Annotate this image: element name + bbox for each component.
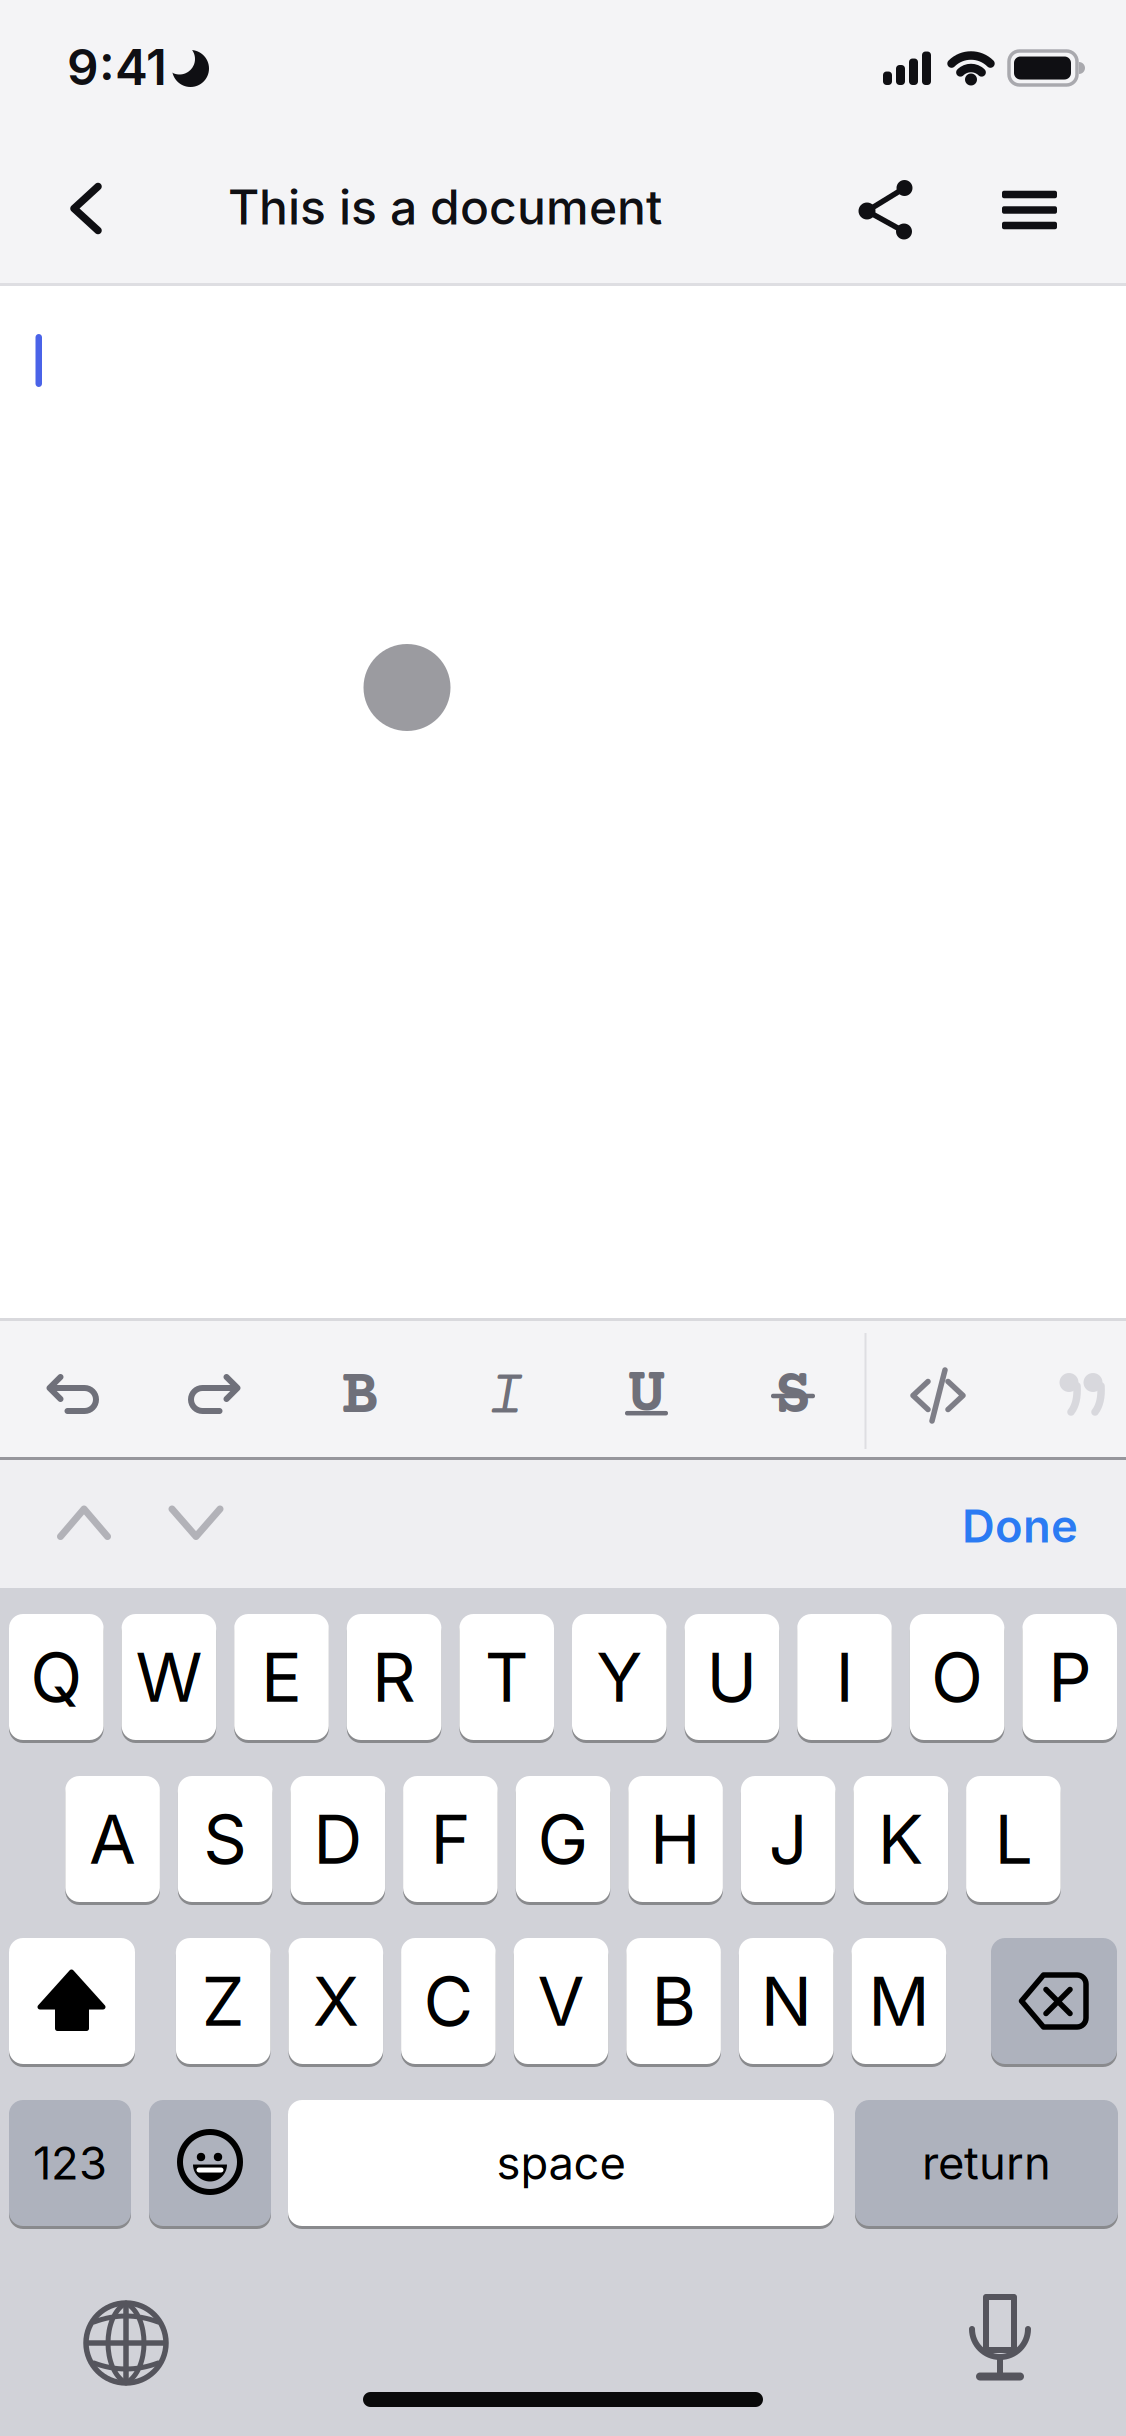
staticText: B bbox=[341, 1362, 379, 1434]
button[interactable]: X bbox=[288, 1936, 383, 2065]
staticText: B bbox=[652, 1960, 696, 2042]
button[interactable]: Done bbox=[778, 1499, 1078, 1553]
button[interactable]: Strikethrough bbox=[738, 1337, 848, 1447]
button[interactable]: M bbox=[851, 1936, 946, 2065]
button[interactable]: Bold bbox=[305, 1337, 415, 1447]
button[interactable]: Back bbox=[64, 178, 124, 239]
staticText: S bbox=[203, 1798, 247, 1880]
staticText: space bbox=[496, 2136, 625, 2190]
staticText: Q bbox=[30, 1636, 82, 1718]
staticText: Z bbox=[202, 1960, 245, 2042]
button[interactable]: Delete bbox=[991, 1936, 1117, 2065]
staticText: V bbox=[537, 1960, 584, 2042]
button[interactable]: H bbox=[628, 1774, 723, 1903]
button[interactable]: I bbox=[797, 1612, 892, 1741]
staticText: K bbox=[878, 1798, 924, 1880]
button[interactable]: R bbox=[347, 1612, 441, 1741]
button[interactable]: return bbox=[855, 2098, 1118, 2227]
button[interactable]: C bbox=[401, 1936, 496, 2065]
button[interactable]: J bbox=[741, 1774, 835, 1903]
staticText: Done bbox=[962, 1499, 1078, 1553]
button[interactable]: O bbox=[910, 1612, 1004, 1741]
button[interactable]: Redo bbox=[177, 1365, 250, 1423]
button[interactable]: D bbox=[290, 1774, 385, 1903]
button[interactable]: K bbox=[853, 1774, 948, 1903]
button[interactable]: Underline bbox=[591, 1337, 701, 1447]
staticText: N bbox=[761, 1960, 812, 2042]
button[interactable]: B bbox=[626, 1936, 721, 2065]
button[interactable]: Shift bbox=[9, 1936, 135, 2065]
staticText: F bbox=[430, 1798, 470, 1880]
button[interactable]: L bbox=[966, 1774, 1061, 1903]
button[interactable]: P bbox=[1022, 1612, 1117, 1741]
button[interactable]: S bbox=[178, 1774, 272, 1903]
staticText: A bbox=[89, 1798, 136, 1880]
button[interactable]: Y bbox=[572, 1612, 667, 1741]
staticText: W bbox=[135, 1636, 202, 1718]
staticText: 9:41 bbox=[67, 37, 167, 97]
button[interactable]: N bbox=[739, 1936, 833, 2065]
staticText: C bbox=[423, 1960, 473, 2042]
staticText: return bbox=[922, 2136, 1051, 2190]
staticText: O bbox=[931, 1636, 983, 1718]
staticText: D bbox=[313, 1798, 362, 1880]
button[interactable]: A bbox=[65, 1774, 160, 1903]
button[interactable]: Quote bbox=[1046, 1352, 1116, 1422]
button[interactable]: W bbox=[122, 1612, 216, 1741]
staticText: I bbox=[487, 1363, 525, 1434]
staticText: E bbox=[261, 1636, 302, 1718]
button[interactable]: F bbox=[403, 1774, 498, 1903]
button[interactable]: Dictation bbox=[965, 2292, 1035, 2384]
button[interactable]: Numbers bbox=[9, 2098, 131, 2227]
button[interactable]: Undo bbox=[36, 1365, 109, 1423]
staticText: P bbox=[1048, 1636, 1091, 1718]
staticText: I bbox=[835, 1636, 853, 1718]
staticText: J bbox=[769, 1798, 808, 1880]
button[interactable]: Previous field bbox=[55, 1504, 113, 1541]
staticText: T bbox=[485, 1636, 529, 1718]
button[interactable]: Next field bbox=[167, 1504, 225, 1541]
button[interactable]: G bbox=[516, 1774, 610, 1903]
staticText: This is a document bbox=[228, 178, 662, 236]
staticText: Y bbox=[596, 1636, 642, 1718]
staticText: U bbox=[627, 1360, 665, 1432]
button[interactable]: Share bbox=[830, 165, 922, 257]
staticText: R bbox=[372, 1636, 416, 1718]
button[interactable]: Emoji bbox=[149, 2098, 271, 2227]
button[interactable]: space bbox=[288, 2098, 834, 2227]
staticText: G bbox=[537, 1798, 588, 1880]
button[interactable]: Menu bbox=[992, 172, 1067, 247]
button[interactable]: V bbox=[514, 1936, 608, 2065]
staticText: M bbox=[868, 1960, 929, 2042]
staticText: X bbox=[313, 1960, 359, 2042]
button[interactable]: Next keyboard bbox=[86, 2303, 166, 2383]
button[interactable]: E bbox=[234, 1612, 329, 1741]
staticText: L bbox=[994, 1798, 1032, 1880]
button[interactable]: Z bbox=[176, 1936, 270, 2065]
button[interactable]: U bbox=[685, 1612, 779, 1741]
button[interactable]: Italic bbox=[451, 1337, 561, 1447]
staticText: U bbox=[706, 1636, 757, 1718]
staticText: S bbox=[774, 1362, 812, 1433]
staticText: H bbox=[650, 1798, 701, 1880]
button[interactable]: Q bbox=[9, 1612, 104, 1741]
button[interactable]: Code bbox=[905, 1367, 971, 1424]
button[interactable]: T bbox=[459, 1612, 554, 1741]
staticText: 123 bbox=[33, 2136, 107, 2190]
